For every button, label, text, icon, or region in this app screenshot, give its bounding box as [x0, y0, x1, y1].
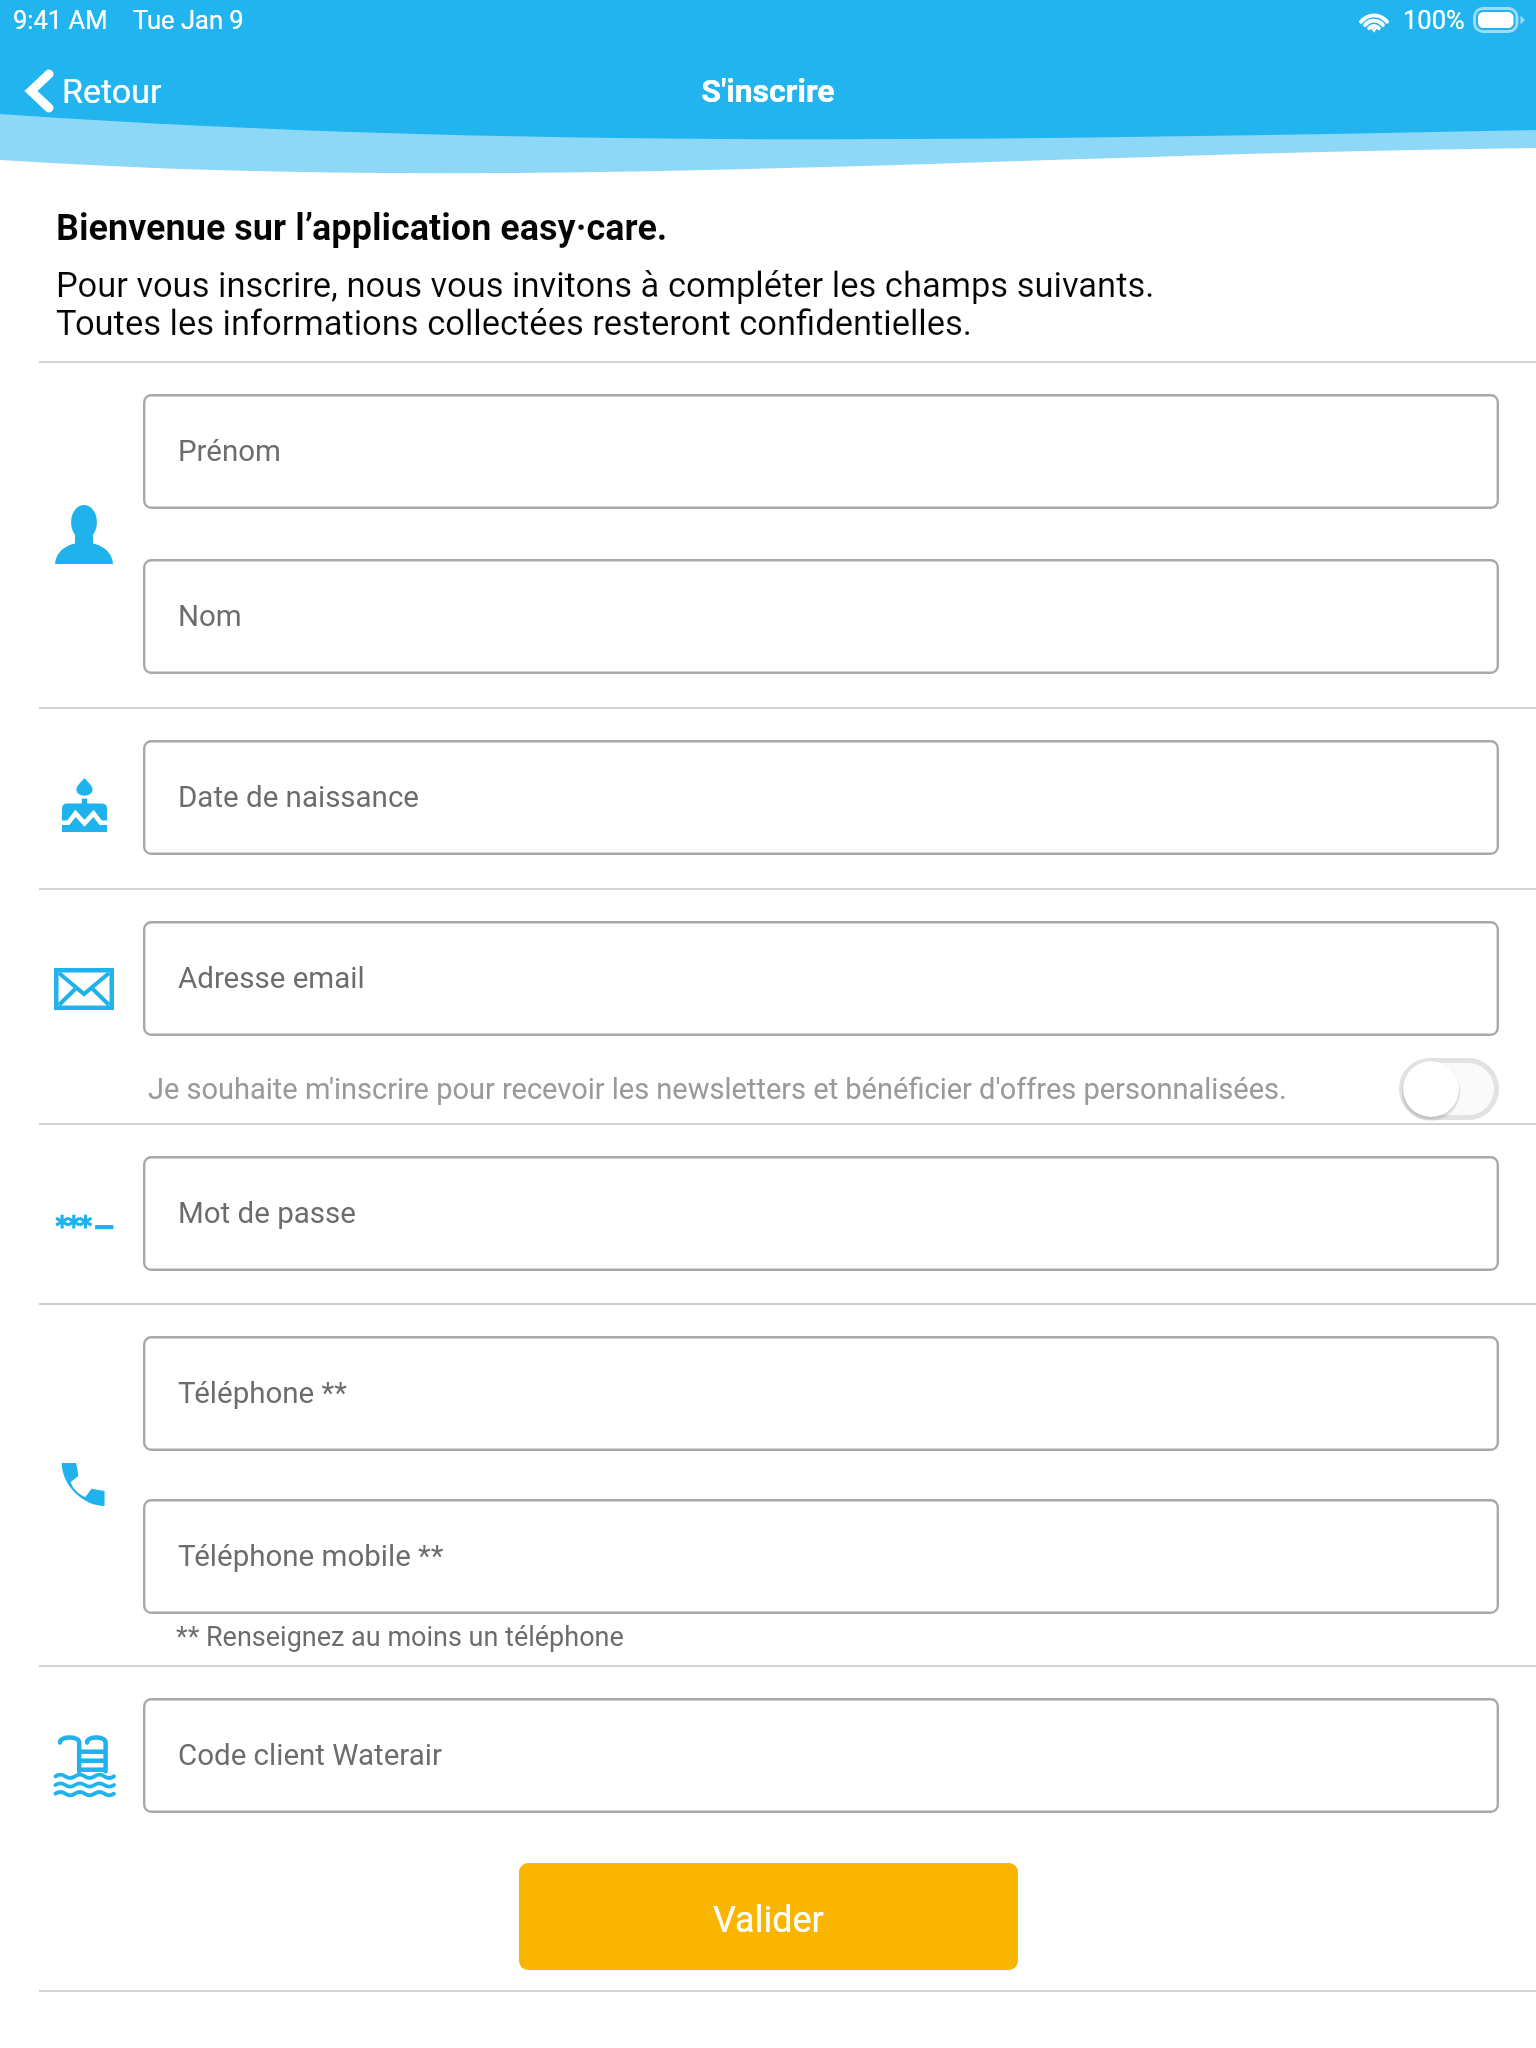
staticText: Mot de passe	[178, 1196, 356, 1231]
staticText: 9:41 AM	[13, 5, 108, 35]
button[interactable]: Prénom	[143, 394, 1499, 509]
staticText: 100%	[1403, 5, 1465, 35]
staticText: Adresse email	[178, 961, 365, 996]
staticText: Téléphone mobile **	[178, 1539, 444, 1574]
button[interactable]: Mot de passe	[143, 1156, 1499, 1271]
staticText: Valider	[713, 1899, 824, 1941]
button[interactable]: Retour	[18, 55, 170, 127]
button[interactable]: Téléphone **	[143, 1336, 1499, 1451]
button[interactable]: Nom	[143, 559, 1499, 674]
button[interactable]: Valider	[519, 1863, 1018, 1970]
staticText: S'inscrire	[701, 72, 835, 110]
staticText: Retour	[62, 71, 162, 111]
button[interactable]: Adresse email	[143, 921, 1499, 1036]
button[interactable]: Date de naissance	[143, 740, 1499, 855]
button[interactable]: Téléphone mobile **	[143, 1499, 1499, 1614]
staticText: Je souhaite m'inscrire pour recevoir les…	[148, 1072, 1399, 1106]
button[interactable]: Code client Waterair	[143, 1698, 1499, 1813]
button[interactable]: Je souhaite m'inscrire pour recevoir les…	[143, 1056, 1499, 1121]
staticText: ** Renseignez au moins un téléphone	[176, 1621, 624, 1653]
staticText: Bienvenue sur l’application easy·care.	[56, 207, 668, 249]
staticText: Téléphone **	[178, 1376, 347, 1411]
staticText: Code client Waterair	[178, 1738, 442, 1773]
staticText: Pour vous inscrire, nous vous invitons à…	[56, 265, 1155, 344]
staticText: Date de naissance	[178, 780, 419, 815]
staticText: Prénom	[178, 434, 281, 469]
staticText: Tue Jan 9	[133, 5, 244, 35]
button[interactable]: Recevoir les newsletters	[1399, 1058, 1499, 1120]
staticText: Nom	[178, 599, 242, 634]
